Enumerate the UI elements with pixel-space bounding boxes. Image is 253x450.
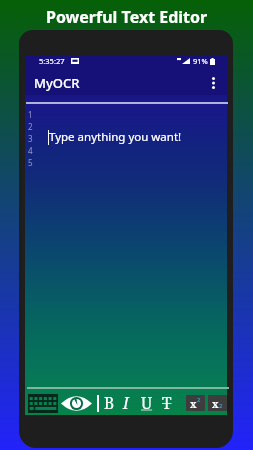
staticText: U bbox=[141, 392, 153, 413]
staticText: x bbox=[190, 397, 197, 411]
staticText: I bbox=[123, 392, 129, 413]
staticText: 5 bbox=[28, 157, 33, 168]
button[interactable]: U bbox=[138, 391, 156, 414]
staticText: 2 bbox=[28, 121, 33, 132]
staticText: Type anything you want! bbox=[49, 129, 182, 145]
staticText: 91% bbox=[193, 56, 208, 66]
button[interactable]: Keyboard bbox=[26, 392, 60, 415]
staticText: Powerful Text Editor bbox=[46, 6, 208, 28]
button[interactable]: Superscript bbox=[186, 395, 205, 411]
staticText: 2 bbox=[219, 402, 223, 410]
staticText: 2 bbox=[197, 396, 201, 404]
staticText: x bbox=[212, 397, 219, 411]
staticText: 4 bbox=[28, 145, 33, 156]
button[interactable]: I bbox=[117, 391, 135, 414]
button[interactable]: More options bbox=[203, 73, 223, 93]
staticText: 3 bbox=[28, 133, 33, 144]
staticText: MyOCR bbox=[34, 74, 80, 92]
staticText: B bbox=[104, 392, 115, 413]
button[interactable]: Subscript bbox=[208, 395, 227, 411]
button[interactable]: T bbox=[158, 391, 176, 414]
button[interactable]: Preview bbox=[59, 392, 93, 415]
button[interactable]: B bbox=[100, 391, 118, 414]
staticText: T bbox=[162, 392, 172, 413]
staticText: 1 bbox=[28, 109, 33, 120]
staticText: 5:35:27 bbox=[39, 56, 65, 66]
